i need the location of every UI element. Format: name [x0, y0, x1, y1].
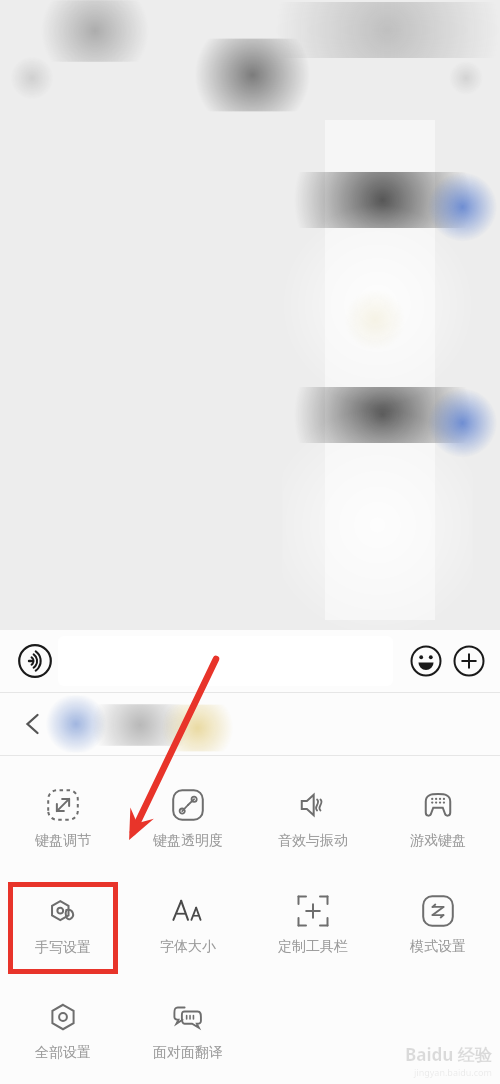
- staticText: 面对面翻译: [153, 1044, 223, 1062]
- staticText: 游戏键盘: [410, 832, 466, 850]
- button[interactable]: 键盘调节: [3, 776, 123, 866]
- button[interactable]: [58, 636, 393, 686]
- staticText: 音效与振动: [278, 832, 348, 850]
- button[interactable]: Voice input: [18, 644, 52, 678]
- staticText: Baidu 经验: [405, 1043, 492, 1066]
- staticText: jingyan.baidu.com: [414, 1066, 492, 1078]
- button[interactable]: Emoji: [410, 645, 442, 677]
- staticText: 键盘透明度: [153, 832, 223, 850]
- staticText: 键盘调节: [35, 832, 91, 850]
- staticText: 模式设置: [410, 938, 466, 956]
- staticText: 定制工具栏: [278, 938, 348, 956]
- button[interactable]: 手写设置: [13, 887, 113, 969]
- button[interactable]: 字体大小: [128, 882, 248, 972]
- button[interactable]: 音效与振动: [253, 776, 373, 866]
- button[interactable]: 定制工具栏: [253, 882, 373, 972]
- button[interactable]: More: [453, 645, 485, 677]
- staticText: 字体大小: [160, 938, 216, 956]
- staticText: 手写设置: [35, 939, 91, 957]
- button[interactable]: 面对面翻译: [128, 988, 248, 1078]
- button[interactable]: 模式设置: [378, 882, 498, 972]
- staticText: 全部设置: [35, 1044, 91, 1062]
- button[interactable]: 游戏键盘: [378, 776, 498, 866]
- button[interactable]: Back: [16, 709, 46, 739]
- button[interactable]: 键盘透明度: [128, 776, 248, 866]
- button[interactable]: 全部设置: [3, 988, 123, 1078]
